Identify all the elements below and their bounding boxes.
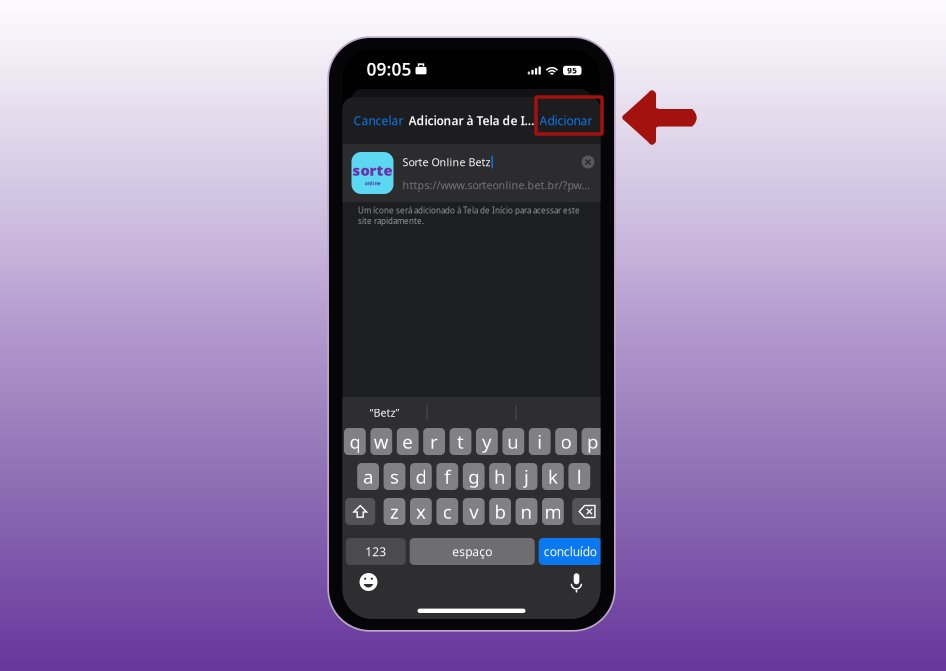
button[interactable]: “Betz” (342, 399, 426, 425)
button[interactable]: e (397, 428, 419, 455)
button[interactable]: Cancelar (353, 105, 403, 135)
button[interactable]: Delete (572, 498, 602, 525)
staticText: espaço (452, 543, 492, 559)
staticText: 123 (365, 543, 386, 559)
staticText: 09:05 (366, 57, 411, 80)
button[interactable]: p (582, 428, 603, 455)
staticText: e (402, 429, 413, 454)
staticText: Cancelar (353, 112, 403, 128)
button[interactable]: Dictation (570, 571, 582, 592)
staticText: g (468, 464, 479, 489)
button[interactable]: b (489, 498, 511, 525)
staticText: q (349, 429, 360, 454)
button[interactable]: t (450, 428, 471, 455)
button[interactable]: h (489, 463, 511, 490)
staticText: t (457, 429, 464, 454)
staticText: c (443, 499, 452, 524)
staticText: d (415, 464, 426, 489)
button[interactable]: l (568, 463, 590, 490)
staticText: Um ícone será adicionado à Tela de Iníci… (358, 205, 580, 226)
staticText: u (507, 429, 519, 454)
staticText: concluído (544, 543, 597, 559)
button[interactable]: g (463, 463, 485, 490)
button[interactable]: espaço (410, 538, 535, 565)
staticText: f (444, 464, 450, 489)
staticText: n (520, 499, 532, 524)
staticText: Sorte Online Betz (402, 155, 490, 169)
staticText: Adicionar à Tela de Início (408, 112, 534, 128)
button[interactable]: k (542, 463, 564, 490)
button[interactable]: z (384, 498, 405, 525)
button[interactable]: Adicionar (539, 105, 592, 135)
button[interactable]: y (476, 428, 498, 455)
staticText: i (537, 429, 542, 454)
staticText: s (390, 464, 399, 489)
staticText: m (544, 499, 561, 524)
button[interactable]: c (436, 498, 458, 525)
staticText: w (374, 429, 389, 454)
button[interactable]: i (529, 428, 551, 455)
button[interactable]: r (423, 428, 445, 455)
button[interactable]: u (502, 428, 524, 455)
button[interactable]: d (410, 463, 432, 490)
button[interactable]: 123 (346, 538, 406, 565)
staticText: h (494, 464, 506, 489)
button[interactable]: Emoji (359, 573, 377, 591)
button[interactable]: m (542, 498, 564, 525)
staticText: https://www.sorteonline.bet.br/?pwa… (402, 178, 594, 192)
staticText: x (416, 499, 426, 524)
button[interactable]: w (370, 428, 392, 455)
staticText: v (469, 499, 478, 524)
button[interactable]: a (357, 463, 379, 490)
staticText: j (524, 464, 529, 489)
staticText: sorte (352, 160, 392, 180)
button[interactable]: v (463, 498, 485, 525)
staticText: Adicionar (539, 112, 592, 128)
button[interactable]: s (384, 463, 405, 490)
staticText: l (577, 464, 582, 489)
staticText: p (587, 429, 598, 454)
staticText: k (548, 464, 558, 489)
button[interactable]: Shift (345, 498, 375, 525)
button[interactable]: f (436, 463, 458, 490)
staticText: “Betz” (369, 405, 399, 420)
button[interactable]: concluído (539, 538, 602, 565)
staticText: 95 (567, 65, 577, 76)
staticText: online (364, 180, 380, 187)
button[interactable]: n (516, 498, 537, 525)
staticText: y (482, 429, 492, 454)
button[interactable]: j (516, 463, 537, 490)
button[interactable]: o (555, 428, 577, 455)
staticText: r (430, 429, 438, 454)
button[interactable]: q (344, 428, 366, 455)
button[interactable]: x (410, 498, 432, 525)
staticText: o (561, 429, 572, 454)
staticText: b (495, 499, 506, 524)
staticText: a (363, 464, 373, 489)
staticText: z (390, 499, 399, 524)
